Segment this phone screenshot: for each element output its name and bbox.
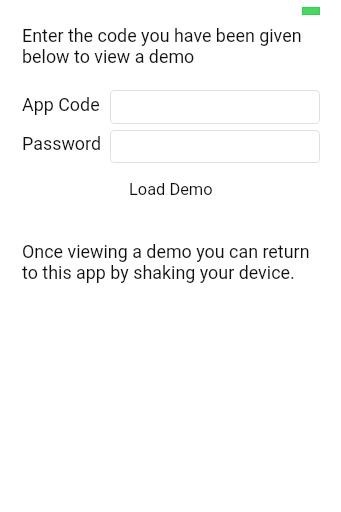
button[interactable]: Password input — [110, 130, 320, 163]
staticText: App Code — [22, 94, 100, 115]
staticText: Load Demo — [129, 180, 213, 199]
button[interactable]: Load Demo — [119, 174, 223, 205]
staticText: Once viewing a demo you can return to th… — [22, 241, 314, 284]
staticText: Enter the code you have been given below… — [22, 25, 314, 68]
staticText: Password — [22, 133, 102, 154]
button[interactable]: App Code input — [110, 90, 320, 124]
